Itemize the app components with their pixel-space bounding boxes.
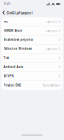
button[interactable]: Síť VPN <box>1 72 63 81</box>
staticText: Tisk <box>4 56 10 60</box>
button[interactable]: Privátní DNS <box>1 81 63 90</box>
staticText: Síť VPN <box>4 74 14 78</box>
button[interactable]: Bezdrátová projekce <box>1 35 63 44</box>
button[interactable]: Tisk <box>1 54 63 63</box>
staticText: Privátní DNS <box>4 84 21 87</box>
staticText: NFC <box>4 20 9 23</box>
button[interactable]: HONOR Share <box>1 26 63 35</box>
staticText: 9:41 <box>4 2 11 6</box>
staticText: Bezdrátová projekce <box>4 38 34 41</box>
button[interactable]: Android Auto <box>1 63 63 72</box>
staticText: Zapnuto <box>45 20 57 23</box>
staticText: HONOR Share <box>4 29 23 32</box>
button[interactable]: Odkaz na Windows <box>1 44 63 54</box>
button[interactable]: NFC <box>1 17 63 26</box>
staticText: Automaticky <box>42 84 57 87</box>
staticText: Zapnuto <box>45 47 57 51</box>
button[interactable]: Další připojení <box>0 8 34 17</box>
staticText: Odkaz na Windows <box>4 47 32 51</box>
staticText: Zapnuto <box>45 29 57 32</box>
staticText: Android Auto <box>4 65 24 69</box>
staticText: Další připojení <box>6 10 32 15</box>
